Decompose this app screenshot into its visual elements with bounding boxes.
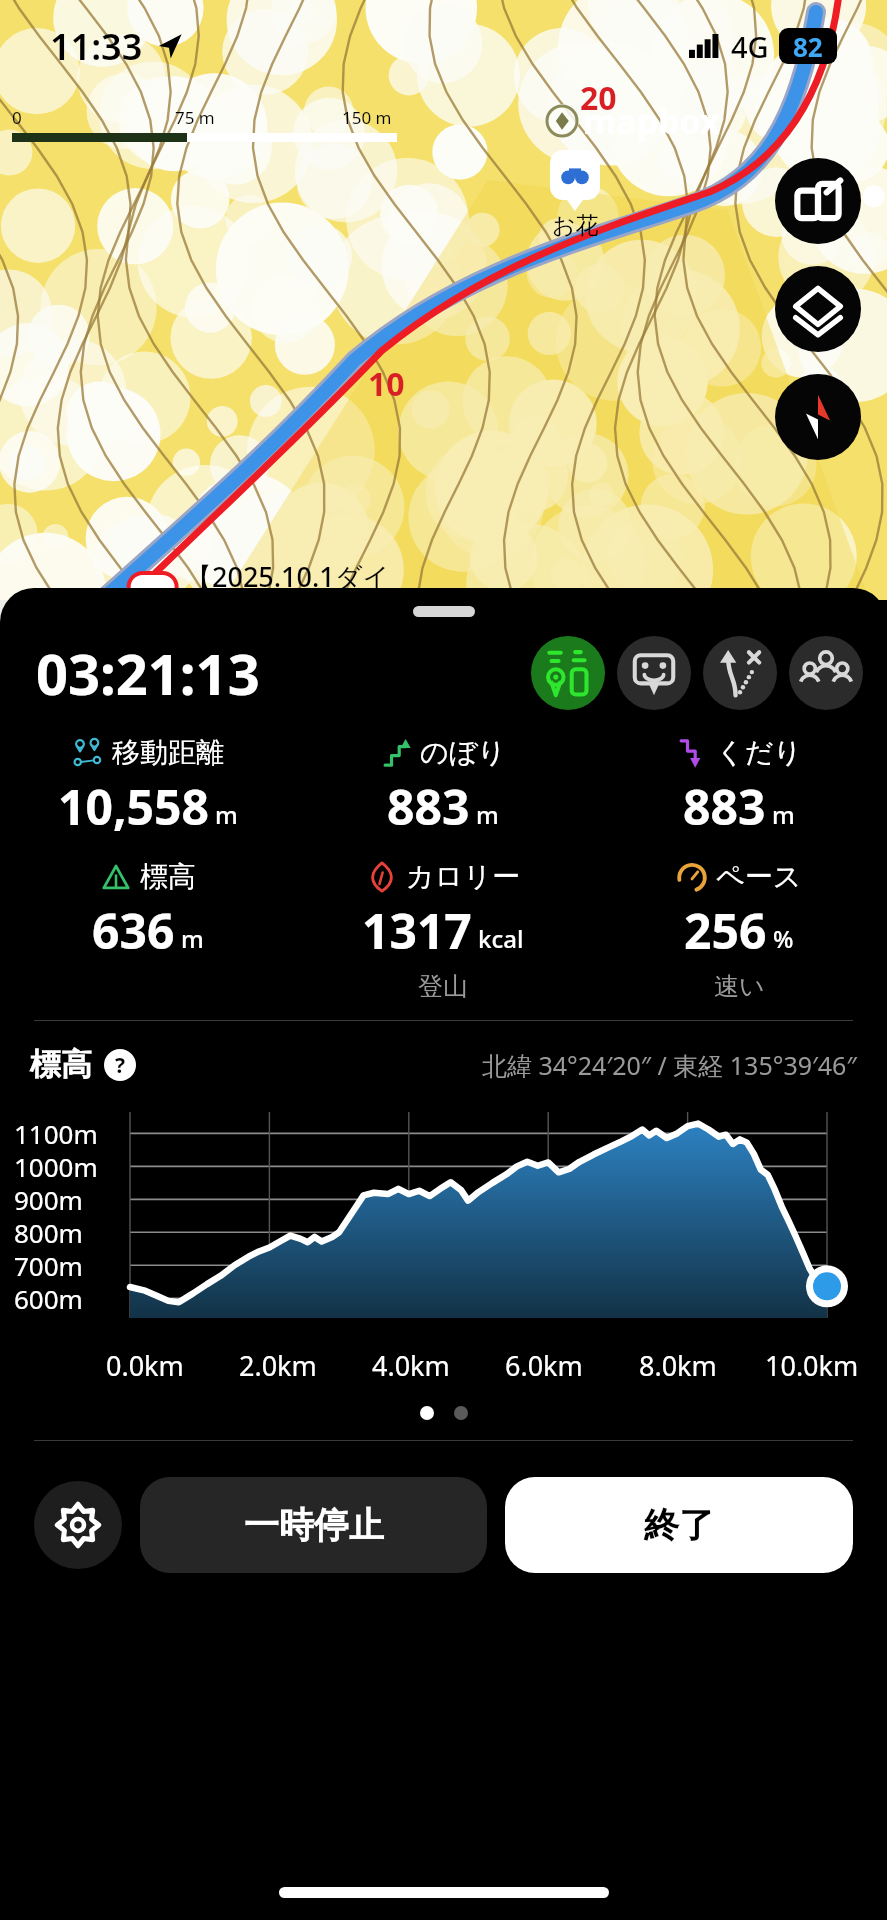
staticText: 11:33	[50, 22, 143, 71]
staticText: m	[772, 798, 795, 831]
staticText: 4.0km	[372, 1347, 450, 1384]
staticText: 636	[92, 898, 175, 963]
staticText: 1317	[362, 898, 472, 963]
button[interactable]: Route	[703, 636, 777, 710]
button[interactable]: Waypoints	[531, 636, 605, 710]
staticText: くだり	[716, 735, 802, 770]
staticText: 700m	[14, 1248, 83, 1283]
staticText: kcal	[478, 922, 524, 955]
staticText: 標高	[30, 1045, 92, 1084]
staticText: %	[773, 922, 794, 955]
staticText: 883	[387, 774, 470, 839]
staticText: 2.0km	[239, 1347, 317, 1384]
staticText: 4G	[731, 27, 769, 66]
staticText: 登山	[418, 971, 468, 1002]
button[interactable]: 終了	[505, 1477, 853, 1573]
button[interactable]: Comment	[617, 636, 691, 710]
staticText: 03:21:13	[36, 635, 260, 711]
staticText: 標高	[140, 859, 196, 894]
staticText: 0	[12, 106, 22, 129]
staticText: 速い	[714, 971, 765, 1002]
staticText: 1000m	[14, 1149, 98, 1184]
staticText: 600m	[14, 1281, 83, 1316]
staticText: 883	[683, 774, 766, 839]
staticText: のぼり	[420, 735, 506, 770]
staticText: 【2025.10.1ダイ	[185, 558, 391, 595]
staticText: 10.0km	[765, 1347, 859, 1384]
staticText: 82	[793, 29, 823, 64]
staticText: 終了	[644, 1503, 714, 1547]
staticText: ペース	[716, 859, 802, 894]
button[interactable]: Recenter map	[775, 158, 861, 244]
staticText: 一時停止	[244, 1503, 384, 1547]
button[interactable]: Compass	[775, 374, 861, 460]
button[interactable]: Help	[104, 1049, 136, 1081]
staticText: 0.0km	[106, 1347, 184, 1384]
staticText: mapbox	[583, 98, 720, 144]
staticText: カロリー	[406, 859, 520, 894]
button[interactable]: Settings	[34, 1481, 122, 1569]
staticText: 256	[684, 898, 767, 963]
staticText: ?	[115, 1051, 126, 1080]
staticText: 8.0km	[639, 1347, 717, 1384]
staticText: お花	[552, 211, 599, 240]
staticText: 75 m	[175, 106, 215, 129]
button[interactable]: Members	[789, 636, 863, 710]
staticText: 20	[580, 76, 617, 120]
staticText: m	[215, 798, 238, 831]
staticText: 10	[368, 362, 405, 406]
staticText: 6.0km	[505, 1347, 583, 1384]
staticText: 150 m	[342, 106, 392, 129]
staticText: 北緯 34°24′20″ / 東経 135°39′46″	[482, 1048, 857, 1082]
button[interactable]: Map layers	[775, 266, 861, 352]
button[interactable]: 一時停止	[140, 1477, 487, 1573]
staticText: m	[476, 798, 499, 831]
staticText: 900m	[14, 1182, 83, 1217]
staticText: 移動距離	[112, 735, 224, 770]
staticText: 1100m	[14, 1116, 98, 1151]
staticText: 800m	[14, 1215, 83, 1250]
staticText: m	[181, 922, 204, 955]
staticText: 10,558	[58, 774, 209, 839]
